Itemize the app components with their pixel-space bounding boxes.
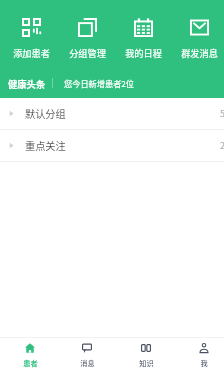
- staticText: 分组管理: [69, 46, 106, 59]
- staticText: 患者: [23, 358, 38, 368]
- staticText: 我: [200, 358, 208, 368]
- button[interactable]: 添加患者: [3, 9, 59, 59]
- staticText: 知识: [139, 358, 154, 368]
- staticText: 重点关注: [25, 138, 66, 153]
- staticText: 健康头条: [8, 77, 46, 90]
- button[interactable]: 消息: [65, 338, 109, 371]
- button[interactable]: 知识: [124, 338, 168, 371]
- button[interactable]: 分组管理: [59, 9, 115, 59]
- staticText: 默认分组: [25, 106, 66, 121]
- staticText: 5: [220, 107, 224, 120]
- staticText: 您今日新增患者2位: [64, 77, 135, 89]
- button[interactable]: 健康头条: [0, 65, 224, 101]
- staticText: 添加患者: [13, 46, 50, 59]
- button[interactable]: 群发消息: [171, 9, 224, 59]
- button[interactable]: 我: [182, 338, 224, 371]
- button[interactable]: 默认分组: [0, 98, 224, 129]
- staticText: 消息: [80, 358, 95, 368]
- staticText: 群发消息: [181, 46, 218, 59]
- button[interactable]: 我的日程: [115, 9, 171, 59]
- button[interactable]: 重点关注: [0, 130, 224, 161]
- staticText: 我的日程: [125, 46, 162, 59]
- button[interactable]: 患者: [8, 338, 52, 371]
- staticText: 2: [220, 139, 224, 152]
